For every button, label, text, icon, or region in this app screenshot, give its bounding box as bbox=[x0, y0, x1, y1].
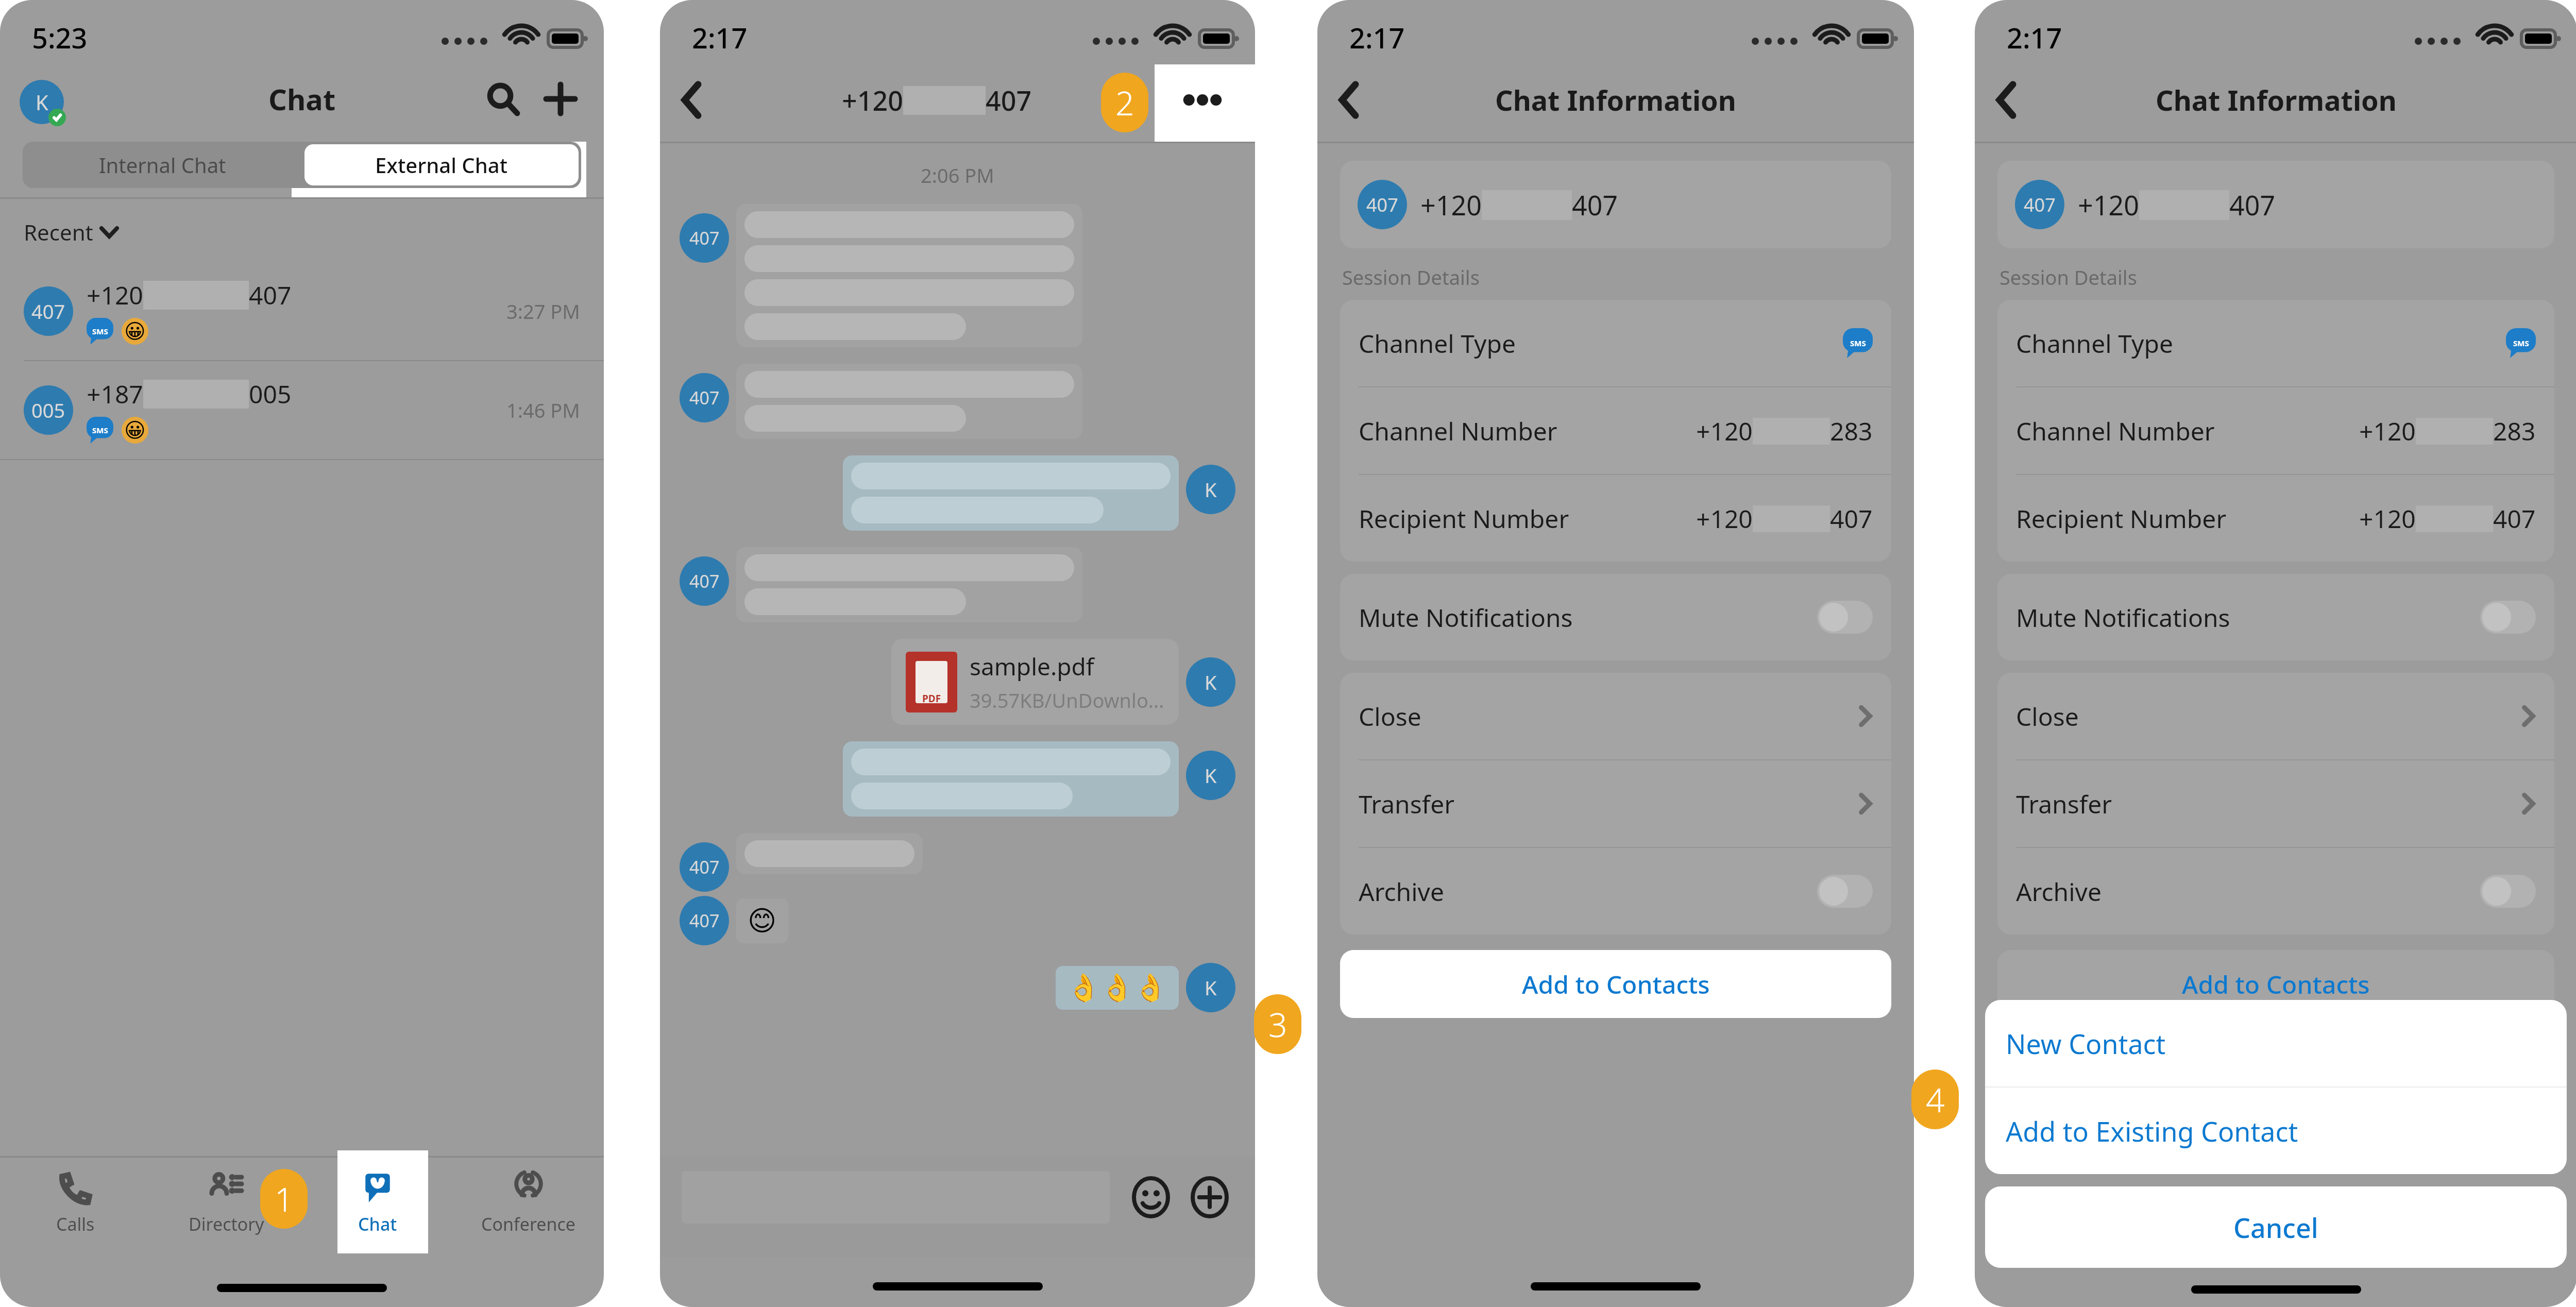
staticText: +120 bbox=[87, 278, 143, 312]
staticText: 407 bbox=[689, 226, 720, 250]
staticText: 005 bbox=[31, 397, 65, 423]
button[interactable] bbox=[736, 833, 923, 874]
button[interactable]: 407 bbox=[1340, 161, 1891, 248]
staticText: 3 bbox=[1268, 1002, 1287, 1047]
staticText: 39.57KB/UnDownlo... bbox=[970, 687, 1164, 714]
button[interactable]: Back bbox=[1996, 81, 2017, 118]
button[interactable]: Add attachment bbox=[1186, 1174, 1233, 1221]
button[interactable]: 005 bbox=[0, 361, 604, 459]
staticText: K bbox=[1205, 669, 1217, 695]
button[interactable]: 407 bbox=[0, 262, 604, 360]
button[interactable]: Add to Existing Contact bbox=[1985, 1088, 2567, 1174]
staticText: +120 bbox=[1696, 414, 1753, 448]
staticText: 407 bbox=[1572, 186, 1618, 223]
button[interactable]: Toggle off bbox=[1817, 601, 1873, 634]
staticText: 407 bbox=[986, 82, 1032, 118]
button[interactable]: New Contact bbox=[1985, 1000, 2567, 1087]
staticText: 407 bbox=[2229, 186, 2276, 223]
button[interactable]: Back bbox=[682, 81, 702, 118]
button[interactable]: Recipient Number bbox=[1997, 475, 2554, 562]
button[interactable]: Channel Type bbox=[1340, 300, 1891, 386]
staticText: Transfer bbox=[1359, 787, 1455, 821]
staticText: Internal Chat bbox=[99, 151, 226, 179]
button[interactable]: More options bbox=[1176, 81, 1229, 118]
staticText: Channel Number bbox=[2016, 414, 2215, 448]
staticText: Channel Type bbox=[2016, 327, 2173, 360]
button[interactable]: Channel Number bbox=[1997, 387, 2554, 474]
staticText: K bbox=[1205, 974, 1217, 1001]
staticText: 😊 bbox=[748, 905, 777, 937]
staticText: Cancel bbox=[2233, 1209, 2318, 1246]
button[interactable] bbox=[843, 455, 1179, 531]
staticText: Recipient Number bbox=[1359, 502, 1569, 535]
staticText: 3:27 PM bbox=[506, 298, 580, 325]
button[interactable]: Search bbox=[478, 74, 528, 124]
button[interactable]: Close bbox=[1997, 673, 2554, 759]
button[interactable]: Toggle off bbox=[2480, 601, 2536, 634]
staticText: 2:17 bbox=[1349, 19, 1405, 57]
staticText: Chat Information bbox=[1495, 81, 1736, 119]
button[interactable]: Emoji bbox=[1127, 1174, 1175, 1221]
staticText: Session Details bbox=[1342, 264, 1480, 291]
button[interactable]: Recent bbox=[24, 217, 118, 247]
button[interactable]: Back bbox=[1339, 81, 1360, 118]
staticText: +120 bbox=[1420, 186, 1482, 223]
button[interactable]: Toggle off bbox=[2480, 875, 2536, 908]
button[interactable] bbox=[736, 204, 1082, 347]
staticText: Chat Information bbox=[2156, 81, 2397, 119]
staticText: SMS bbox=[2513, 338, 2529, 348]
staticText: Mute Notifications bbox=[1359, 601, 1573, 634]
button[interactable]: New chat bbox=[536, 74, 585, 124]
button[interactable]: Chat bbox=[302, 1158, 453, 1261]
button[interactable]: Conference bbox=[453, 1158, 604, 1261]
staticText: K bbox=[36, 88, 48, 116]
button[interactable]: Channel Number bbox=[1340, 387, 1891, 474]
staticText: sample.pdf bbox=[970, 650, 1094, 683]
staticText: Recent bbox=[24, 217, 93, 247]
button[interactable]: Calls bbox=[0, 1158, 151, 1261]
staticText: 407 bbox=[1366, 192, 1398, 217]
staticText: SMS bbox=[92, 425, 108, 435]
button[interactable] bbox=[736, 547, 1082, 622]
staticText: +120 bbox=[2359, 502, 2416, 535]
button[interactable]: Archive bbox=[1340, 848, 1891, 935]
staticText: 2 bbox=[1115, 80, 1134, 125]
staticText: Add to Contacts bbox=[2182, 967, 2370, 1001]
staticText: Add to Existing Contact bbox=[2006, 1113, 2298, 1149]
button[interactable] bbox=[843, 741, 1179, 817]
button[interactable]: Toggle off bbox=[1817, 875, 1873, 908]
button[interactable]: 407 bbox=[1997, 161, 2554, 248]
button[interactable]: Cancel bbox=[1985, 1186, 2567, 1268]
staticText: Recipient Number bbox=[2016, 502, 2227, 535]
button[interactable]: Mute Notifications bbox=[1997, 574, 2554, 660]
button[interactable]: Archive bbox=[1997, 848, 2554, 935]
button[interactable]: 😊 bbox=[736, 898, 788, 943]
button[interactable]: Transfer bbox=[1340, 760, 1891, 847]
staticText: Chat bbox=[268, 79, 336, 118]
staticText: 👌👌👌 bbox=[1067, 972, 1167, 1004]
staticText: 407 bbox=[249, 278, 292, 312]
button[interactable]: 👌👌👌 bbox=[1056, 966, 1179, 1010]
button[interactable]: Channel Type bbox=[1997, 300, 2554, 386]
button[interactable]: Close bbox=[1340, 673, 1891, 759]
staticText: 005 bbox=[249, 377, 292, 411]
staticText: 407 bbox=[689, 909, 720, 932]
staticText: PDF bbox=[922, 692, 941, 705]
button[interactable]: Internal Chat bbox=[23, 142, 302, 188]
button[interactable]: Directory bbox=[151, 1158, 302, 1261]
staticText: SMS bbox=[92, 326, 108, 336]
button[interactable]: Recipient Number bbox=[1340, 475, 1891, 562]
button[interactable] bbox=[736, 364, 1082, 439]
staticText: +120 bbox=[2078, 186, 2139, 223]
staticText: 1 bbox=[275, 1177, 294, 1221]
button[interactable]: Add to Contacts bbox=[1997, 950, 2554, 1018]
button[interactable]: Add to Contacts bbox=[1340, 950, 1891, 1018]
staticText: K bbox=[1205, 476, 1217, 503]
button[interactable]: Mute Notifications bbox=[1340, 574, 1891, 660]
button[interactable]: Transfer bbox=[1997, 760, 2554, 847]
staticText: 😀 bbox=[124, 319, 146, 344]
staticText: Channel Type bbox=[1359, 327, 1516, 360]
button[interactable]: External Chat bbox=[304, 144, 579, 185]
button[interactable]: PDF bbox=[891, 639, 1179, 725]
